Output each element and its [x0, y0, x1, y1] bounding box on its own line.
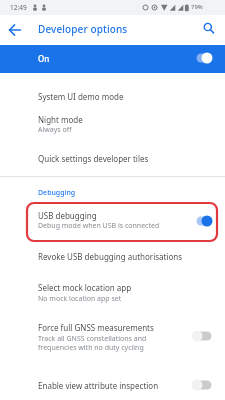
- button[interactable]: [0, 145, 225, 176]
- button[interactable]: [0, 311, 225, 361]
- button[interactable]: [4, 19, 26, 41]
- staticText: 79%: [191, 3, 203, 11]
- staticText: Night mode: [38, 114, 83, 125]
- staticText: Revoke USB debugging authorisations: [38, 251, 183, 262]
- staticText: Select mock location app: [38, 282, 132, 293]
- staticText: Developer options: [38, 22, 128, 36]
- button[interactable]: [0, 361, 225, 400]
- button[interactable]: [0, 73, 225, 113]
- staticText: USB debugging: [38, 210, 97, 221]
- staticText: Force full GNSS measurements: [38, 322, 154, 333]
- button[interactable]: [0, 203, 225, 241]
- staticText: Debug mode when USB is connected: [38, 221, 160, 231]
- staticText: 12:49: [10, 3, 27, 12]
- staticText: Quick settings developer tiles: [38, 153, 149, 164]
- staticText: No mock location app set: [38, 294, 122, 304]
- staticText: Track all GNSS constellations and: [38, 334, 147, 344]
- button[interactable]: [197, 17, 223, 43]
- staticText: frequencies with no duty cycling: [38, 343, 144, 353]
- staticText: Always off: [38, 125, 72, 135]
- staticText: Enable view attribute inspection: [38, 380, 159, 391]
- button[interactable]: [0, 241, 225, 271]
- staticText: On: [38, 53, 50, 64]
- button[interactable]: [0, 45, 225, 73]
- staticText: Debugging: [38, 188, 76, 198]
- button[interactable]: [0, 113, 225, 145]
- button[interactable]: [0, 271, 225, 311]
- staticText: System UI demo mode: [38, 91, 124, 102]
